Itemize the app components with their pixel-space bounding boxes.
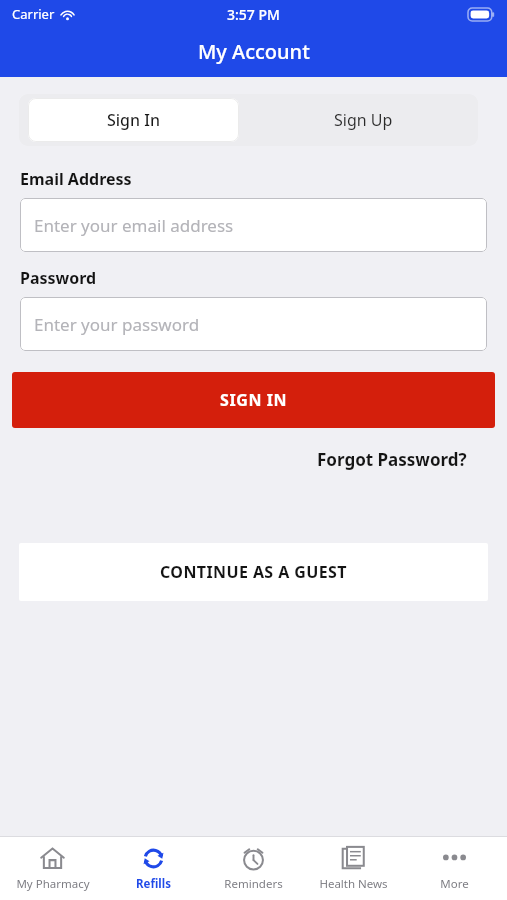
- staticText: My Pharmacy: [16, 876, 90, 892]
- staticText: SIGN IN: [220, 389, 288, 411]
- staticText: Enter your email address: [34, 214, 234, 237]
- button[interactable]: Forgot Password?: [317, 448, 467, 471]
- staticText: My Account: [198, 38, 310, 65]
- button[interactable]: CONTINUE AS A GUEST: [19, 543, 488, 601]
- staticText: Reminders: [224, 876, 283, 892]
- button[interactable]: More: [407, 836, 502, 900]
- staticText: More: [440, 876, 469, 892]
- staticText: Sign In: [107, 109, 160, 131]
- staticText: Password: [20, 267, 97, 289]
- staticText: Forgot Password?: [317, 448, 467, 471]
- staticText: Health News: [319, 876, 388, 892]
- staticText: Sign Up: [334, 109, 393, 131]
- staticText: Refills: [136, 876, 171, 892]
- button[interactable]: Sign Up: [248, 94, 478, 146]
- button[interactable]: Reminders: [206, 836, 301, 900]
- button[interactable]: Enter your email address: [20, 198, 487, 252]
- button[interactable]: Health News: [306, 836, 401, 900]
- staticText: CONTINUE AS A GUEST: [160, 561, 347, 583]
- staticText: 3:57 PM: [227, 5, 280, 24]
- staticText: Carrier: [12, 5, 55, 23]
- button[interactable]: Refills: [106, 836, 201, 900]
- button[interactable]: SIGN IN: [12, 372, 495, 428]
- staticText: Email Address: [20, 168, 132, 190]
- button[interactable]: Sign In: [28, 98, 239, 142]
- staticText: Enter your password: [34, 313, 200, 336]
- button[interactable]: My Pharmacy: [5, 836, 100, 900]
- button[interactable]: Enter your password: [20, 297, 487, 351]
